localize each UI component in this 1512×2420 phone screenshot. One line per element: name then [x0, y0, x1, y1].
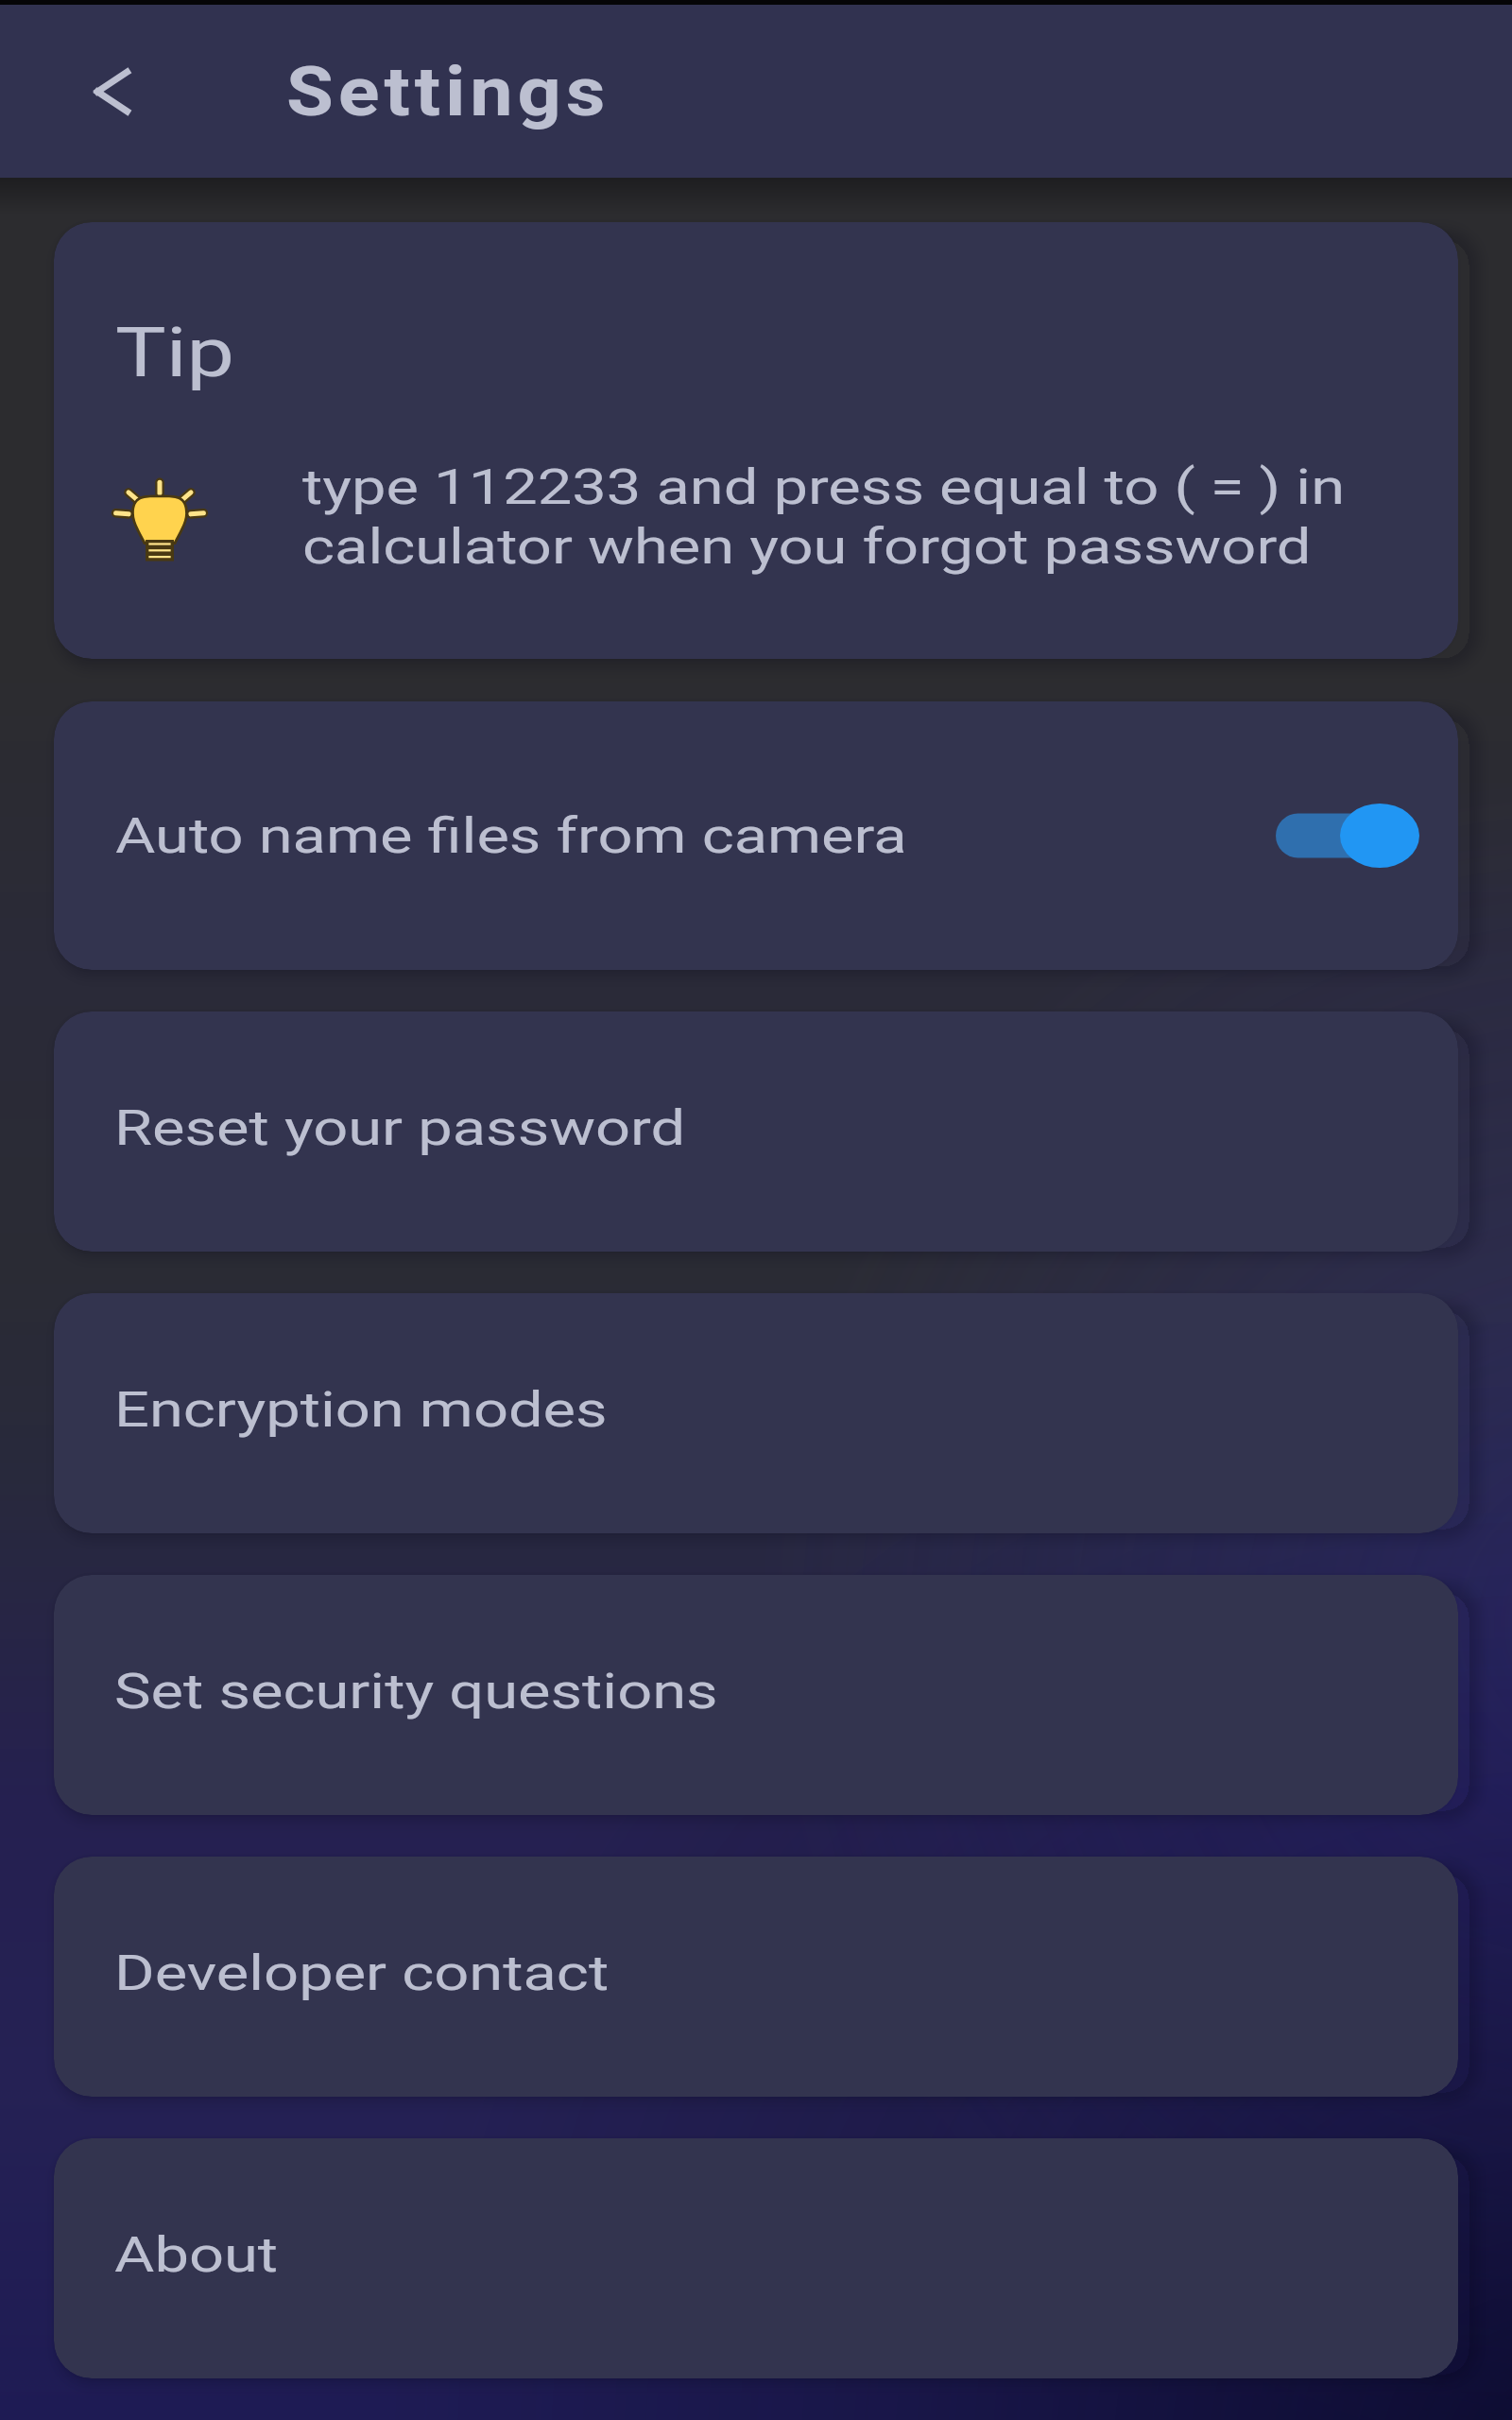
staticText: Reset your password [114, 1099, 686, 1157]
staticText: type 112233 and press equal to ( = ) in … [302, 458, 1390, 576]
button[interactable]: Reset your password [54, 1011, 1458, 1252]
button[interactable]: Set security questions [54, 1575, 1458, 1815]
staticText: Encryption modes [114, 1381, 608, 1439]
button[interactable]: Back [66, 46, 157, 137]
button[interactable]: Tip [54, 222, 1458, 659]
staticText: Tip [115, 313, 235, 392]
staticText: Settings [286, 51, 610, 132]
button[interactable]: Auto name files from camera [1276, 784, 1419, 888]
button[interactable]: Developer contact [54, 1857, 1458, 2097]
button[interactable]: Auto name files from camera [54, 701, 1458, 970]
staticText: Auto name files from camera [115, 807, 908, 865]
button[interactable]: About [54, 2138, 1458, 2378]
button[interactable]: Encryption modes [54, 1293, 1458, 1533]
staticText: Developer contact [114, 1945, 609, 2002]
staticText: Set security questions [114, 1663, 718, 1720]
staticText: About [114, 2226, 279, 2284]
